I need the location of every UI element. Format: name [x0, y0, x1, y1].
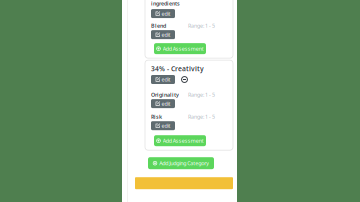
button[interactable]: Add Assessment	[154, 43, 206, 54]
button[interactable]: Add Judging Category	[148, 157, 214, 169]
button[interactable]: edit	[151, 99, 175, 108]
staticText: Range: 1 - 5	[188, 113, 215, 120]
staticText: edit	[161, 122, 170, 129]
staticText: edit	[161, 31, 170, 38]
staticText: Blend	[151, 22, 166, 29]
button[interactable]: edit	[151, 75, 175, 84]
staticText: edit	[161, 100, 170, 107]
staticText: edit	[161, 76, 170, 83]
button[interactable]: edit	[151, 9, 175, 18]
staticText: ingredients	[151, 0, 180, 7]
staticText: Risk	[151, 113, 162, 120]
staticText: 34% - Creativity	[151, 64, 204, 73]
staticText: edit	[161, 10, 170, 17]
staticText: Range: 1 - 5	[188, 22, 215, 29]
button[interactable]: edit	[151, 30, 175, 39]
staticText: Originality	[151, 91, 179, 98]
staticText: Range: 1 - 5	[188, 91, 215, 98]
button[interactable]: Add Assessment	[154, 135, 206, 146]
button[interactable]: edit	[151, 121, 175, 130]
staticText: Add Assessment	[163, 45, 204, 52]
staticText: Add Judging Category	[159, 160, 209, 167]
staticText: Add Assessment	[163, 137, 204, 144]
